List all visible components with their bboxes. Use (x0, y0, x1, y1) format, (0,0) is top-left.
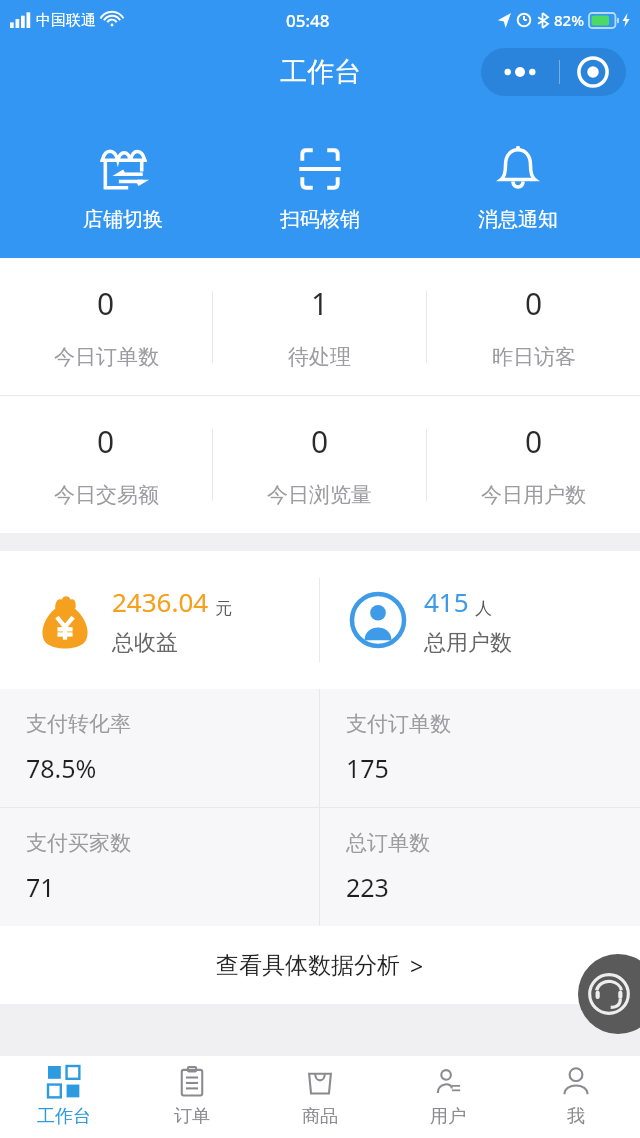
button[interactable]: 查看具体数据分析 (0, 926, 640, 1004)
staticText: 总订单数 (346, 830, 430, 856)
button[interactable]: 415 (320, 551, 640, 689)
button[interactable]: 0 (427, 396, 640, 533)
button[interactable]: 总订单数 (320, 808, 640, 926)
button[interactable]: 支付转化率 (0, 689, 319, 807)
staticText: 0 (525, 421, 543, 462)
staticText: 1 (311, 283, 329, 324)
staticText: 0 (311, 421, 329, 462)
button[interactable]: 订单 (128, 1056, 256, 1138)
staticText: > (410, 950, 424, 981)
button[interactable]: 工作台 (0, 1056, 128, 1138)
staticText: 175 (346, 751, 389, 785)
staticText: 今日交易额 (54, 482, 159, 508)
staticText: 0 (97, 283, 115, 324)
staticText: 工作台 (280, 55, 361, 89)
staticText: 总收益 (112, 629, 178, 657)
staticText: 223 (346, 870, 389, 904)
staticText: 支付买家数 (26, 830, 131, 856)
button[interactable]: 1 (213, 258, 426, 395)
button[interactable]: 消息通知 (443, 139, 593, 236)
staticText: 支付转化率 (26, 711, 131, 737)
button[interactable]: More options (481, 48, 626, 96)
staticText: 0 (97, 421, 115, 462)
button[interactable]: 支付买家数 (0, 808, 319, 926)
button[interactable]: 支付订单数 (320, 689, 640, 807)
staticText: 扫码核销 (280, 207, 360, 232)
button[interactable]: 扫码核销 (245, 139, 395, 236)
button[interactable]: 用户 (384, 1056, 512, 1138)
button[interactable]: 2436.04 (0, 551, 319, 689)
staticText: 今日订单数 (54, 344, 159, 370)
staticText: 今日用户数 (481, 482, 586, 508)
staticText: 商品 (302, 1105, 338, 1128)
staticText: 支付订单数 (346, 711, 451, 737)
staticText: 82% (554, 10, 584, 30)
staticText: 今日浏览量 (267, 482, 372, 508)
staticText: 店铺切换 (83, 207, 163, 232)
staticText: 415 (424, 584, 469, 619)
button[interactable]: 商品 (256, 1056, 384, 1138)
staticText: 元 (215, 598, 232, 619)
button[interactable]: 我 (512, 1056, 640, 1138)
staticText: 78.5% (26, 751, 97, 785)
staticText: 待处理 (288, 344, 351, 370)
staticText: 工作台 (37, 1105, 91, 1128)
staticText: 总用户数 (424, 629, 512, 657)
staticText: 人 (475, 598, 492, 619)
button[interactable]: 店铺切换 (48, 139, 198, 236)
staticText: 消息通知 (478, 207, 558, 232)
staticText: 0 (525, 283, 543, 324)
button[interactable]: 0 (0, 258, 212, 395)
staticText: 查看具体数据分析 (216, 951, 400, 980)
staticText: 订单 (174, 1105, 210, 1128)
staticText: 2436.04 (112, 584, 209, 619)
staticText: 中国联通 (36, 11, 96, 30)
staticText: 昨日访客 (492, 344, 576, 370)
button[interactable]: Customer service (578, 954, 640, 1034)
staticText: 71 (26, 870, 55, 904)
staticText: 用户 (430, 1105, 466, 1128)
staticText: 我 (567, 1105, 585, 1128)
button[interactable]: 0 (213, 396, 426, 533)
button[interactable]: 0 (427, 258, 640, 395)
button[interactable]: 0 (0, 396, 212, 533)
staticText: 05:48 (286, 9, 330, 32)
